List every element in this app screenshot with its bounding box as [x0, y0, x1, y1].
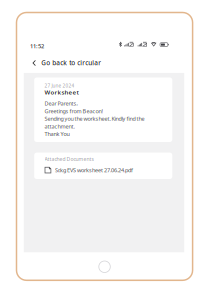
- staticText: Attached Documents: [45, 156, 94, 162]
- staticText: Go back to circular: [41, 58, 101, 67]
- staticText: 27 June 2024: [45, 82, 75, 89]
- staticText: Worksheet: [45, 88, 79, 96]
- button[interactable]: Sr.kg EVS worksheet 27.06.24.pdf: [34, 153, 162, 161]
- staticText: Sr.kg EVS worksheet 27.06.24.pdf: [55, 166, 133, 174]
- staticText: Dear Parents, Greetings from Beacon! Sen…: [45, 100, 145, 138]
- staticText: 11:52: [30, 42, 44, 50]
- button[interactable]: Go back to circular: [24, 55, 184, 73]
